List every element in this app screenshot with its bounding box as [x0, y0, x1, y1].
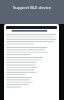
staticText: Support BLE device: [13, 5, 52, 11]
button[interactable]: Support BLE device: [0, 0, 64, 24]
button[interactable]: [6, 26, 57, 29]
